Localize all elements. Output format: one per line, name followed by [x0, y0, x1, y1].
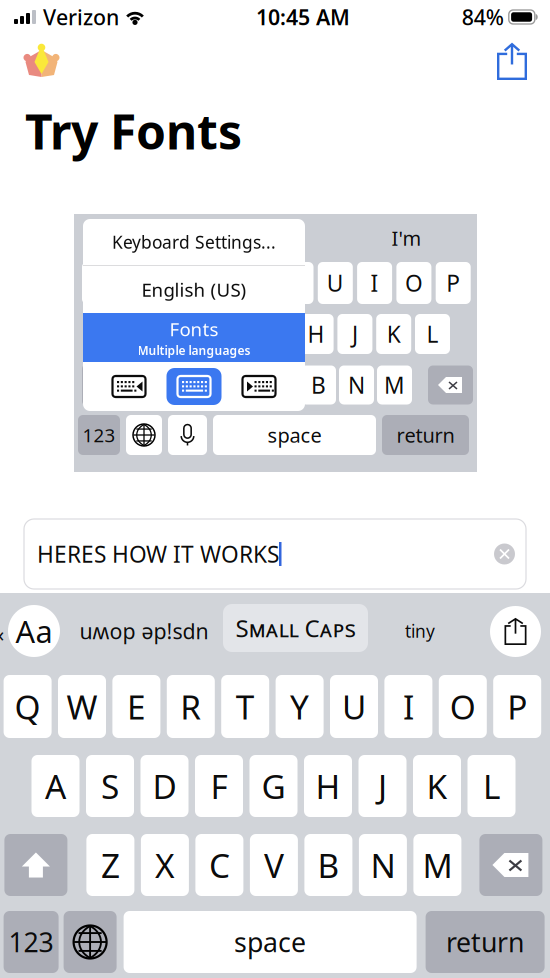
staticText: P — [446, 268, 460, 298]
staticText: S — [101, 764, 119, 808]
staticText: S — [155, 319, 167, 349]
button[interactable]: Next keyboard — [64, 911, 117, 973]
staticText: uʍop ǝp!sdn — [79, 617, 208, 645]
button[interactable]: I — [384, 675, 432, 738]
button[interactable]: K — [413, 755, 461, 817]
staticText: D — [152, 764, 176, 808]
button[interactable]: B — [304, 834, 352, 896]
button[interactable]: X — [141, 834, 189, 896]
button[interactable]: J — [358, 755, 406, 817]
button[interactable]: E — [112, 675, 160, 738]
button[interactable]: Delete — [479, 834, 542, 896]
button[interactable]: Share — [487, 33, 537, 90]
staticText: Keyboard Settings... — [112, 230, 276, 253]
staticText: R — [180, 684, 201, 729]
staticText: 84% — [462, 3, 504, 31]
staticText: X — [198, 370, 211, 400]
button[interactable]: D — [140, 755, 188, 817]
button[interactable]: G — [249, 755, 297, 817]
button[interactable]: A — [31, 755, 79, 817]
staticText: W — [66, 684, 97, 729]
button[interactable]: U — [330, 675, 378, 738]
staticText: space — [234, 924, 306, 960]
staticText: D — [191, 319, 208, 349]
staticText: O — [450, 684, 476, 729]
staticText: space — [267, 422, 321, 448]
button[interactable]: F — [195, 755, 243, 817]
staticText: N — [348, 370, 365, 400]
button[interactable]: O — [439, 675, 487, 738]
staticText: Verizon — [43, 3, 119, 31]
button[interactable]: T — [221, 675, 269, 738]
button[interactable]: uʍop ǝp!sdn — [77, 607, 211, 655]
staticText: O — [405, 268, 423, 298]
staticText: K — [387, 319, 401, 349]
staticText: Z — [101, 843, 120, 887]
button[interactable]: M — [413, 834, 461, 896]
button[interactable]: Sᴍᴀʟʟ Cᴀᴘs — [223, 604, 368, 652]
staticText: Z — [160, 370, 173, 400]
button[interactable]: tiny — [400, 607, 440, 655]
staticText: J — [352, 319, 358, 349]
staticText: T — [236, 684, 255, 729]
button[interactable]: 123 — [4, 911, 59, 973]
button[interactable]: W — [58, 675, 106, 738]
staticText: 123 — [9, 924, 54, 960]
button[interactable]: Y — [276, 675, 324, 738]
staticText: H — [315, 764, 340, 808]
button[interactable]: Share — [490, 606, 541, 657]
button[interactable]: V — [250, 834, 298, 896]
staticText: F — [232, 319, 244, 349]
button[interactable]: Font styles — [8, 605, 60, 657]
staticText: M — [422, 843, 452, 887]
staticText: E — [127, 684, 146, 729]
staticText: English (US) — [141, 277, 246, 302]
staticText: return — [446, 924, 524, 960]
staticText: R — [210, 268, 224, 298]
button[interactable]: H — [304, 755, 352, 817]
staticText: Try Fonts — [25, 99, 242, 163]
button[interactable]: return — [426, 911, 545, 973]
staticText: L — [426, 319, 438, 349]
button[interactable]: space — [124, 911, 417, 973]
staticText: B — [317, 843, 339, 887]
staticText: B — [311, 370, 326, 400]
staticText: K — [426, 764, 447, 808]
staticText: Fonts — [169, 317, 218, 341]
staticText: V — [264, 843, 284, 887]
staticText: L — [483, 764, 500, 808]
button[interactable]: P — [493, 675, 541, 738]
button[interactable]: R — [167, 675, 215, 738]
staticText: P — [507, 684, 527, 729]
staticText: G — [261, 764, 285, 808]
staticText: I — [403, 684, 414, 729]
staticText: Aa — [15, 611, 52, 651]
staticText: Y — [290, 684, 309, 729]
staticText: HERES HOW IT WORKS — [37, 539, 279, 569]
staticText: N — [370, 843, 395, 887]
staticText: I — [371, 268, 379, 298]
staticText: M — [384, 370, 405, 400]
button[interactable]: Shift — [4, 834, 67, 896]
staticText: ‹‹ — [0, 621, 4, 647]
staticText: Q — [15, 684, 41, 729]
staticText: return — [396, 422, 454, 448]
button[interactable]: L — [467, 755, 515, 817]
staticText: U — [327, 268, 344, 298]
button[interactable]: Q — [4, 675, 52, 738]
staticText: X — [155, 843, 175, 887]
staticText: H — [308, 319, 325, 349]
button[interactable]: N — [359, 834, 407, 896]
button[interactable]: Z — [86, 834, 134, 896]
button[interactable]: S — [86, 755, 134, 817]
staticText: I'm — [391, 225, 421, 251]
button[interactable]: C — [195, 834, 243, 896]
staticText: J — [378, 764, 387, 808]
staticText: 123 — [82, 423, 115, 447]
